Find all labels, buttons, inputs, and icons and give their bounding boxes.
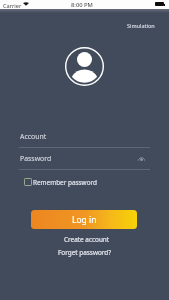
button[interactable]: Create account	[64, 235, 110, 244]
button[interactable]: Log in	[31, 210, 137, 229]
button[interactable]: Remember password	[24, 176, 97, 188]
staticText: Log in	[72, 214, 97, 226]
staticText: 8:00 PM	[71, 1, 93, 9]
button[interactable]: Forget password?	[58, 248, 112, 257]
staticText: Account	[20, 132, 47, 141]
button[interactable]: Show password	[134, 152, 148, 166]
staticText: Carrier	[3, 2, 22, 9]
staticText: Remember password	[33, 178, 97, 187]
staticText: Simulation	[127, 22, 155, 29]
staticText: Password	[20, 154, 52, 163]
